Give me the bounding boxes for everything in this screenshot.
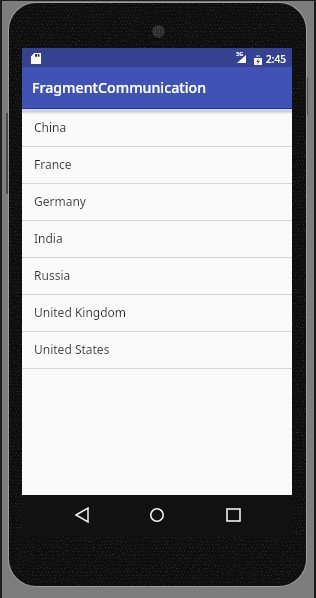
staticText: China	[34, 119, 67, 135]
button[interactable]: Germany	[22, 184, 292, 221]
button[interactable]: India	[22, 221, 292, 258]
button[interactable]: Russia	[22, 258, 292, 295]
staticText: Russia	[34, 267, 71, 283]
button[interactable]: Recent apps	[212, 495, 254, 536]
staticText: United Kingdom	[34, 304, 127, 320]
staticText: United States	[34, 341, 110, 357]
staticText: France	[34, 156, 72, 172]
button[interactable]: Home	[136, 495, 178, 536]
button[interactable]: China	[22, 110, 292, 147]
staticText: Germany	[34, 193, 86, 209]
button[interactable]: United Kingdom	[22, 295, 292, 332]
staticText: India	[34, 230, 63, 246]
button[interactable]: Back	[61, 495, 103, 536]
button[interactable]: United States	[22, 332, 292, 369]
button[interactable]: France	[22, 147, 292, 184]
staticText: 3G	[236, 50, 244, 58]
staticText: FragmentCommunication	[32, 78, 207, 97]
button[interactable]: FragmentCommunication	[22, 67, 292, 108]
staticText: 2:45	[266, 52, 286, 66]
